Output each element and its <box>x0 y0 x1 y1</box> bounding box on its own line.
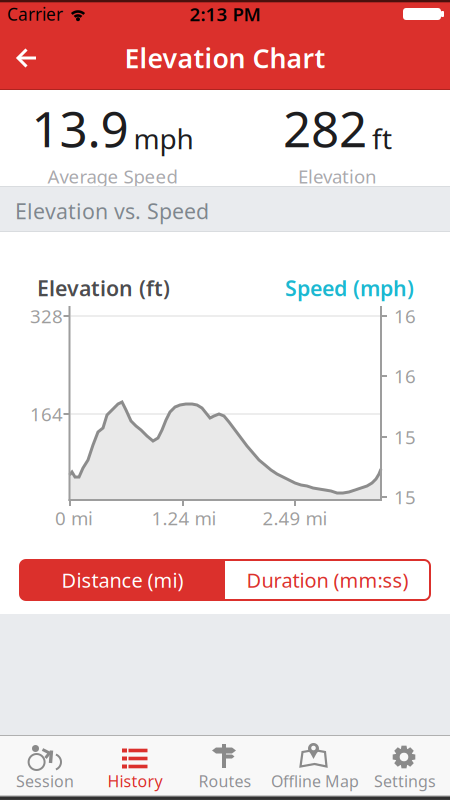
staticText: 328 <box>30 304 63 328</box>
staticText: mph <box>133 120 193 157</box>
staticText: Duration (mm:ss) <box>246 567 408 593</box>
staticText: 2:13 PM <box>189 2 260 26</box>
staticText: Elevation <box>298 164 377 189</box>
staticText: Elevation Chart <box>124 40 325 76</box>
staticText: 1.24 mi <box>151 506 216 530</box>
button[interactable]: Offline Map <box>270 735 360 800</box>
staticText: 164 <box>30 402 63 426</box>
staticText: Session <box>16 770 74 792</box>
staticText: 16 <box>394 364 416 388</box>
staticText: Offline Map <box>271 770 359 792</box>
staticText: 15 <box>394 425 416 449</box>
staticText: Average Speed <box>47 164 177 189</box>
button[interactable]: Duration (mm:ss) <box>225 560 430 600</box>
button[interactable]: Session <box>0 735 90 800</box>
staticText: 0 mi <box>55 506 93 530</box>
button[interactable] <box>3 36 47 80</box>
staticText: ft <box>372 120 392 157</box>
staticText: Carrier <box>7 2 63 25</box>
staticText: Routes <box>198 770 251 792</box>
staticText: History <box>107 770 162 792</box>
staticText: Speed (mph) <box>285 274 414 302</box>
staticText: 16 <box>394 304 416 328</box>
staticText: 13.9 <box>31 95 128 161</box>
staticText: Distance (mi) <box>61 567 183 593</box>
staticText: Elevation (ft) <box>37 274 170 302</box>
staticText: Elevation vs. Speed <box>15 197 209 225</box>
button[interactable]: Distance (mi) <box>20 560 225 600</box>
staticText: 282 <box>283 95 367 161</box>
staticText: Settings <box>374 770 436 792</box>
staticText: 15 <box>394 485 416 509</box>
button[interactable]: History <box>90 735 180 800</box>
button[interactable]: Settings <box>360 735 450 800</box>
staticText: 2.49 mi <box>262 506 327 530</box>
button[interactable]: Routes <box>180 735 270 800</box>
